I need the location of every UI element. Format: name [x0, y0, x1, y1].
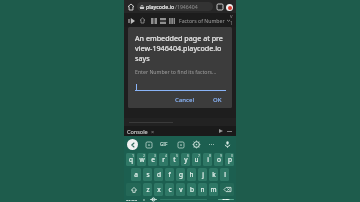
button[interactable]: Expand console [225, 127, 233, 135]
staticText: q [129, 155, 133, 164]
button[interactable]: v1 [230, 13, 233, 27]
button[interactable]: Backspace [220, 183, 234, 196]
staticText: t [173, 155, 176, 164]
button[interactable]: u [192, 153, 201, 166]
button[interactable]: s [143, 168, 152, 181]
staticText: x [157, 185, 161, 194]
button[interactable]: t [170, 153, 179, 166]
staticText: 3 [154, 153, 157, 158]
button[interactable]: playcode.io [137, 2, 213, 11]
button[interactable]: Run [127, 16, 136, 25]
staticText: z [146, 185, 150, 194]
staticText: 8 [209, 153, 212, 158]
button[interactable]: Layout option 3 [167, 16, 176, 25]
staticText: r [162, 155, 165, 164]
button[interactable]: i [203, 153, 212, 166]
button[interactable]: m [209, 183, 218, 196]
button[interactable]: v [176, 183, 185, 196]
staticText: n [200, 185, 205, 194]
staticText: c [168, 185, 172, 194]
staticText: 6 [187, 153, 190, 158]
staticText: 1 [132, 153, 135, 158]
staticText: Enter Number to find its factors... [135, 68, 217, 75]
staticText: l [224, 170, 226, 179]
button[interactable]: Account [224, 2, 234, 12]
staticText: u [194, 155, 199, 164]
staticText: /1946404 [175, 3, 198, 10]
button[interactable]: Back [127, 139, 138, 150]
staticText: 4 [165, 153, 168, 158]
staticText: o [217, 155, 221, 164]
button[interactable]: Close console [150, 128, 156, 134]
staticText: ° [143, 198, 145, 201]
button[interactable]: Done [218, 199, 234, 200]
staticText: d [157, 170, 161, 179]
button[interactable]: g [176, 168, 185, 181]
button[interactable]: e [148, 153, 157, 166]
staticText: p [228, 155, 232, 164]
button[interactable]: Console [127, 128, 148, 135]
button[interactable]: l [220, 168, 229, 181]
button[interactable]: d [154, 168, 163, 181]
button[interactable]: b [187, 183, 196, 196]
staticText: i [207, 155, 209, 164]
button[interactable]: Shift [126, 183, 141, 196]
button[interactable]: j [198, 168, 207, 181]
staticText: An embedded page at pre view-1946404.pla… [135, 33, 223, 63]
button[interactable]: Change language [148, 198, 159, 201]
button[interactable]: w [137, 153, 146, 166]
button[interactable]: f [165, 168, 174, 181]
button[interactable]: OK [209, 95, 226, 105]
staticText: ?123 [126, 198, 138, 201]
button[interactable]: q [126, 153, 135, 166]
button[interactable]: r [159, 153, 168, 166]
staticText: a [134, 170, 138, 179]
button[interactable]: y [181, 153, 190, 166]
button[interactable]: Home [126, 2, 136, 12]
staticText: m [210, 185, 217, 194]
button[interactable]: n [198, 183, 207, 196]
staticText: GIF [160, 141, 168, 147]
staticText: h [189, 170, 194, 179]
button[interactable]: Layout option 1 [149, 16, 158, 25]
staticText: 2 [143, 153, 146, 158]
button[interactable]: x [154, 183, 163, 196]
button[interactable]: p [225, 153, 234, 166]
button[interactable]: o [214, 153, 223, 166]
staticText: e [151, 155, 155, 164]
button[interactable]: GIF [158, 138, 170, 150]
button[interactable]: Run console [217, 127, 225, 135]
button[interactable]: Tabs [215, 2, 224, 11]
button[interactable]: More options [206, 139, 217, 150]
staticText: 5 [176, 153, 179, 158]
staticText: playcode.io [146, 3, 175, 10]
button[interactable]: Cancel [171, 95, 199, 105]
button[interactable]: Stickers [143, 139, 154, 150]
button[interactable]: Voice input [222, 139, 233, 150]
button[interactable]: h [187, 168, 196, 181]
button[interactable]: z [143, 183, 152, 196]
button[interactable]: a [131, 168, 141, 181]
staticText: f [168, 170, 171, 179]
button[interactable]: c [165, 183, 174, 196]
button[interactable]: Layout option 2 [158, 16, 167, 25]
button[interactable]: Clipboard [175, 139, 186, 150]
button[interactable]: Settings [191, 139, 202, 150]
staticText: k [212, 170, 216, 179]
staticText: v [179, 185, 183, 194]
staticText: y [184, 155, 188, 164]
button[interactable] [135, 82, 226, 91]
staticText: Factors of Number [179, 17, 225, 24]
button[interactable]: Comma [139, 198, 148, 201]
staticText: g [179, 170, 183, 179]
button[interactable]: Project home [138, 16, 147, 25]
button[interactable]: k [209, 168, 218, 181]
staticText: × [151, 128, 155, 134]
staticText: j [202, 170, 204, 179]
button[interactable]: ?123 [125, 198, 139, 201]
button[interactable]: Factors of Number [179, 17, 230, 24]
